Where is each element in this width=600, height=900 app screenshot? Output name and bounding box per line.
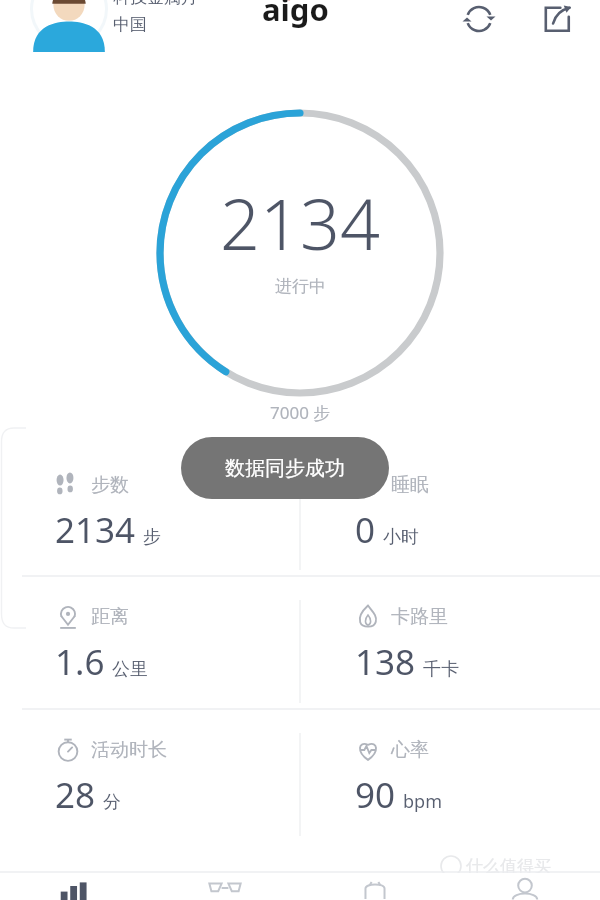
staticText: 2134 (220, 175, 380, 270)
button[interactable]: 活动时长 (55, 735, 299, 819)
staticText: 卡路里 (391, 605, 448, 629)
button[interactable]: Profile (30, 0, 108, 48)
staticText: 科技金属月 (113, 0, 198, 8)
button[interactable]: Device (300, 873, 450, 900)
staticText: 0 (355, 506, 376, 554)
button[interactable]: 睡眠 (355, 470, 599, 554)
staticText: 距离 (91, 605, 129, 629)
staticText: 进行中 (275, 276, 326, 297)
staticText: 小时 (383, 526, 419, 549)
staticText: 公里 (112, 658, 148, 681)
staticText: 138 (355, 638, 416, 686)
button[interactable]: 卡路里 (355, 602, 599, 686)
staticText: 步数 (91, 473, 129, 497)
button[interactable]: Share (534, 0, 580, 42)
staticText: 1.6 (55, 638, 105, 686)
staticText: 28 (55, 771, 96, 819)
staticText: 90 (355, 771, 396, 819)
staticText: 中国 (113, 14, 147, 35)
button[interactable]: 距离 (55, 602, 299, 686)
staticText: 活动时长 (91, 738, 167, 762)
button[interactable]: Profile (450, 873, 600, 900)
staticText: 数据同步成功 (225, 456, 345, 481)
staticText: 分 (103, 791, 121, 814)
staticText: aigo (262, 0, 329, 30)
button[interactable]: Statistics (0, 873, 150, 900)
staticText: 睡眠 (391, 473, 429, 497)
staticText: 心率 (391, 738, 429, 762)
button[interactable]: Sync (456, 0, 502, 42)
button[interactable]: Sports (150, 873, 300, 900)
staticText: 步 (143, 526, 161, 549)
button[interactable]: 步数 (55, 470, 299, 554)
staticText: 7000 步 (270, 401, 331, 424)
button[interactable]: 心率 (355, 735, 599, 819)
staticText: bpm (403, 789, 442, 814)
staticText: 2134 (55, 506, 136, 554)
staticText: 什么值得买 (466, 856, 551, 877)
staticText: 千卡 (423, 658, 459, 681)
